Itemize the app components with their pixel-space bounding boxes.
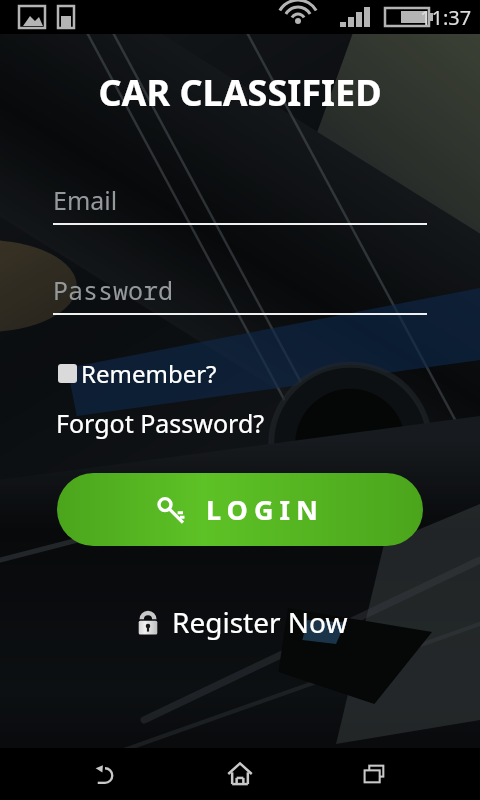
button[interactable]: Forgot Password? (56, 406, 265, 440)
button[interactable]: Register Now (133, 603, 348, 641)
staticText: Forgot Password? (56, 406, 265, 440)
button[interactable]: Email (53, 183, 427, 225)
staticText: CAR CLASSIFIED (0, 68, 480, 117)
button[interactable]: Password (53, 273, 427, 315)
button[interactable]: Remember? (58, 357, 217, 390)
button[interactable]: Back (75, 748, 135, 800)
button[interactable]: LOGIN (57, 473, 423, 546)
staticText: Password (53, 273, 174, 307)
staticText: LOGIN (206, 491, 324, 528)
staticText: Remember? (81, 357, 217, 390)
staticText: Register Now (172, 603, 348, 641)
staticText: 11:37 (420, 4, 472, 31)
button[interactable]: Home (210, 748, 270, 800)
button[interactable]: Recent apps (345, 748, 405, 800)
staticText: Email (53, 183, 118, 217)
